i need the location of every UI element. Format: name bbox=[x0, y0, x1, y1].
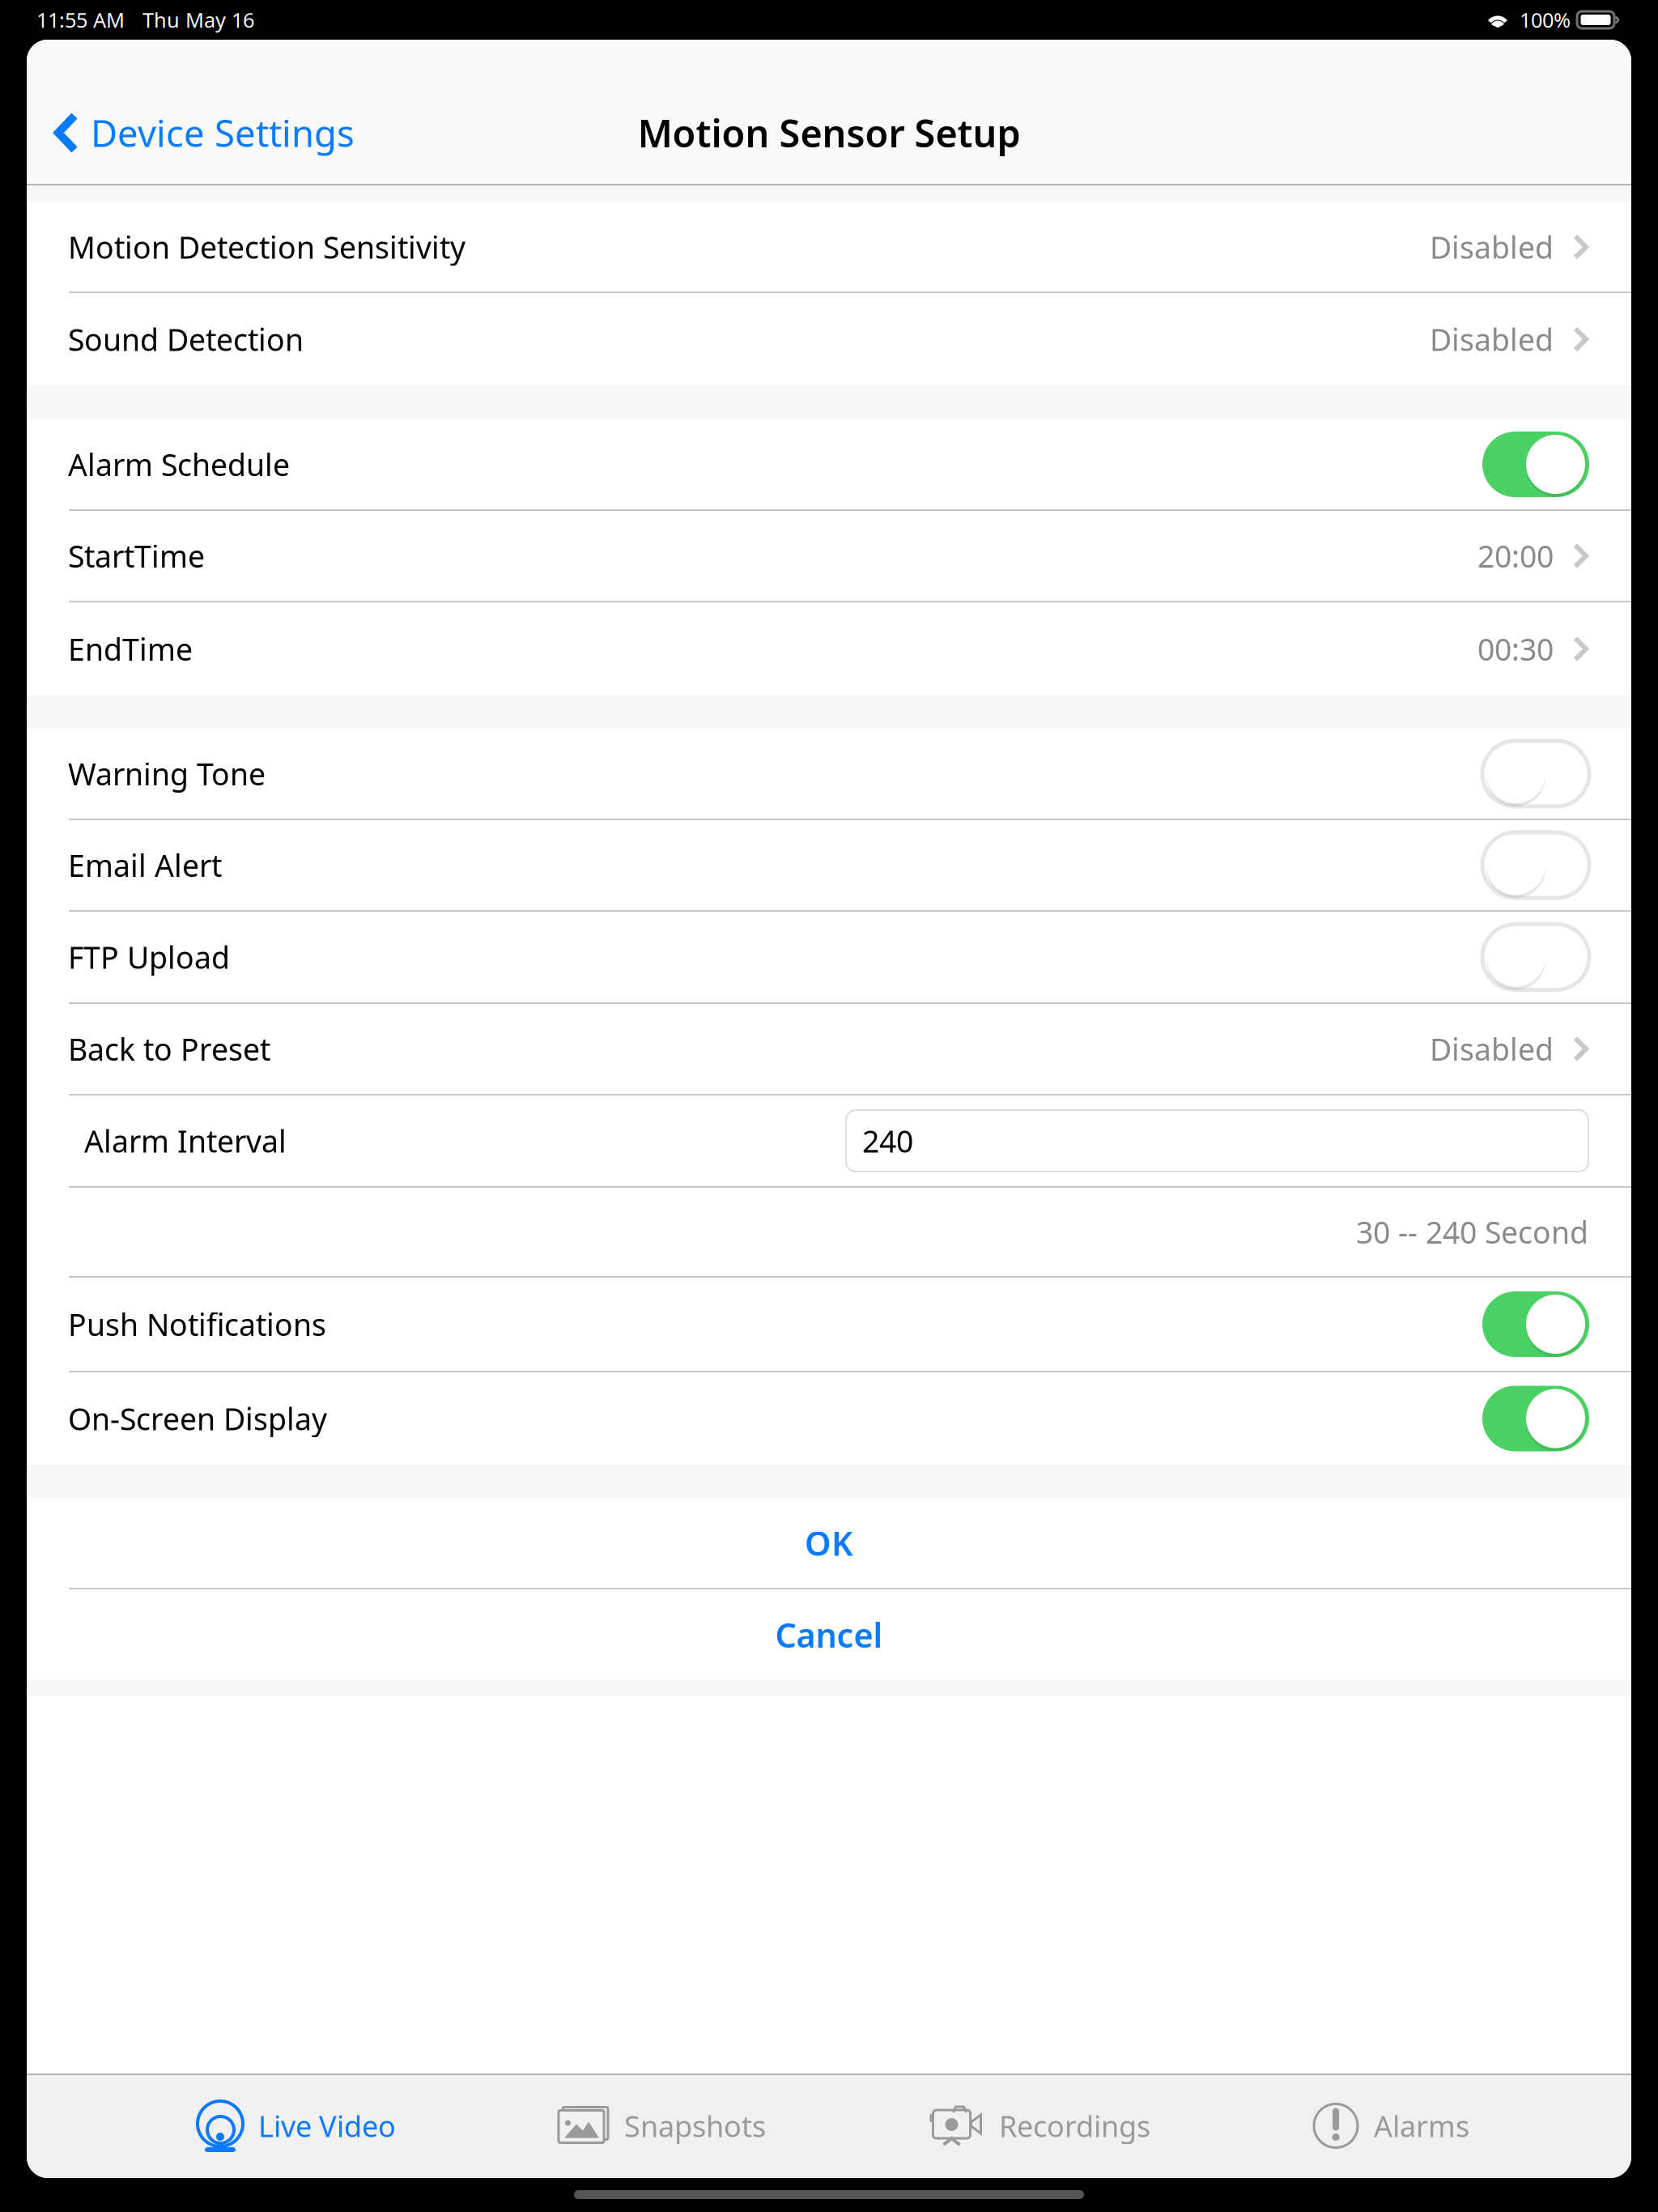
button[interactable]: StartTime bbox=[27, 511, 1631, 601]
staticText: Back to Preset bbox=[68, 1029, 270, 1069]
button[interactable]: Alarms bbox=[1312, 2100, 1469, 2152]
staticText: Push Notifications bbox=[68, 1304, 326, 1344]
staticText: Alarms bbox=[1374, 2106, 1469, 2145]
staticText: Warning Tone bbox=[68, 754, 266, 794]
staticText: Alarm Schedule bbox=[68, 444, 290, 484]
button[interactable]: Live Video bbox=[197, 2100, 396, 2152]
staticText: 11:55 AM bbox=[36, 6, 125, 33]
button[interactable]: OK bbox=[27, 1498, 1631, 1588]
staticText: OK bbox=[805, 1521, 853, 1565]
button[interactable]: Back to Preset bbox=[27, 1004, 1631, 1094]
button[interactable]: Snapshots bbox=[558, 2100, 766, 2152]
staticText: 20:00 bbox=[1477, 536, 1554, 576]
staticText: Device Settings bbox=[91, 108, 355, 157]
button[interactable]: Warning Tone bbox=[27, 729, 1631, 819]
staticText: Live Video bbox=[258, 2106, 396, 2145]
button[interactable]: EndTime bbox=[27, 602, 1631, 696]
button[interactable]: Sound Detection bbox=[27, 293, 1631, 385]
staticText: 240 bbox=[862, 1121, 913, 1161]
staticText: Disabled bbox=[1430, 1029, 1554, 1069]
staticText: Disabled bbox=[1430, 227, 1554, 267]
button[interactable]: 240 bbox=[846, 1110, 1588, 1172]
button[interactable]: Push Notifications bbox=[27, 1278, 1631, 1371]
button[interactable]: On-Screen Display bbox=[27, 1372, 1631, 1465]
button[interactable]: Alarm Schedule bbox=[27, 419, 1631, 509]
button[interactable]: FTP Upload bbox=[27, 912, 1631, 1002]
staticText: Snapshots bbox=[624, 2106, 766, 2145]
staticText: StartTime bbox=[68, 536, 205, 576]
staticText: Motion Detection Sensitivity bbox=[68, 227, 466, 267]
staticText: Alarm Interval bbox=[84, 1121, 287, 1161]
button[interactable]: Recordings bbox=[928, 2100, 1150, 2152]
staticText: Motion Sensor Setup bbox=[638, 108, 1020, 158]
staticText: On-Screen Display bbox=[68, 1398, 327, 1439]
button[interactable]: Cancel bbox=[27, 1589, 1631, 1680]
staticText: 100% bbox=[1520, 6, 1571, 33]
staticText: 30 -- 240 Second bbox=[1356, 1212, 1588, 1252]
staticText: FTP Upload bbox=[68, 937, 230, 977]
staticText: EndTime bbox=[68, 629, 193, 669]
staticText: 00:30 bbox=[1477, 629, 1554, 669]
button[interactable]: Email Alert bbox=[27, 820, 1631, 910]
staticText: Thu May 16 bbox=[142, 6, 254, 33]
staticText: Recordings bbox=[999, 2106, 1150, 2145]
staticText: Disabled bbox=[1430, 319, 1554, 359]
button[interactable]: Motion Detection Sensitivity bbox=[27, 202, 1631, 291]
staticText: Cancel bbox=[775, 1613, 883, 1657]
staticText: Sound Detection bbox=[68, 319, 304, 359]
staticText: Email Alert bbox=[68, 845, 222, 885]
button[interactable]: Device Settings bbox=[53, 104, 355, 162]
